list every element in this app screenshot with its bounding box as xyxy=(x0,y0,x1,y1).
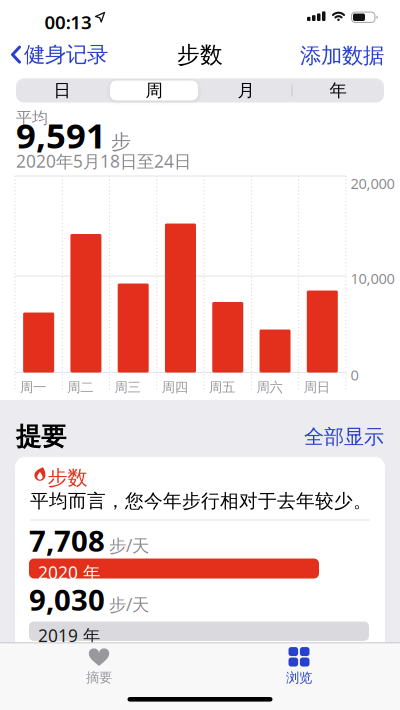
staticText: 周 xyxy=(145,80,162,101)
staticText: 周日 xyxy=(304,379,330,395)
button[interactable]: 浏览 xyxy=(239,644,359,688)
staticText: 00:13 xyxy=(44,9,92,34)
staticText: 周五 xyxy=(209,379,235,395)
button[interactable]: 日 xyxy=(16,78,108,102)
staticText: 周四 xyxy=(162,379,188,395)
staticText: 周一 xyxy=(20,379,46,395)
staticText: 2020 年 xyxy=(38,561,100,584)
button[interactable]: 周 xyxy=(108,78,200,102)
button[interactable]: 年 xyxy=(292,78,384,102)
button[interactable]: 返回健身记录 xyxy=(11,41,108,68)
staticText: 周三 xyxy=(115,379,141,395)
staticText: 9,591 xyxy=(16,112,106,158)
staticText: 浏览 xyxy=(286,670,312,686)
button[interactable]: 摘要 xyxy=(39,644,159,688)
button[interactable]: 月 xyxy=(200,78,292,102)
button[interactable]: 添加数据 xyxy=(300,42,384,69)
staticText: 步/天 xyxy=(109,593,149,616)
staticText: 步/天 xyxy=(109,534,149,557)
button[interactable]: 步数 xyxy=(15,457,385,669)
staticText: 9,030 xyxy=(29,580,105,619)
staticText: 健身记录 xyxy=(24,41,108,68)
staticText: 2020年5月18日至24日 xyxy=(16,149,191,172)
staticText: 步数 xyxy=(47,465,87,490)
staticText: 0 xyxy=(350,365,358,384)
staticText: 7,708 xyxy=(29,521,105,560)
staticText: 周六 xyxy=(256,379,282,395)
staticText: 全部显示 xyxy=(304,424,384,449)
staticText: 平均而言，您今年步行相对于去年较少。 xyxy=(30,489,372,512)
staticText: 20,000 xyxy=(350,173,394,193)
staticText: 摘要 xyxy=(86,669,112,686)
staticText: 年 xyxy=(329,80,346,101)
staticText: 月 xyxy=(237,80,254,101)
staticText: 提要 xyxy=(16,421,66,452)
staticText: 10,000 xyxy=(350,268,394,288)
staticText: 步 xyxy=(111,129,131,154)
staticText: 步数 xyxy=(177,41,223,69)
staticText: 日 xyxy=(53,80,70,101)
button[interactable]: 全部显示 xyxy=(304,424,384,449)
staticText: 周二 xyxy=(67,379,93,395)
staticText: 添加数据 xyxy=(300,42,384,69)
staticText: 平均 xyxy=(16,108,48,128)
staticText: 2019 年 xyxy=(38,624,100,647)
